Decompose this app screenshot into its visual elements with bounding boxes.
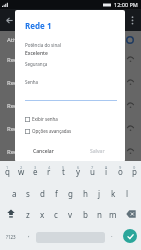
staticText: o xyxy=(118,166,123,177)
staticText: Rede 1 xyxy=(25,20,52,31)
staticText: 12:00 PM xyxy=(114,1,138,8)
staticText: Rede 4 xyxy=(7,125,27,133)
button[interactable]: g xyxy=(63,182,77,203)
staticText: Potência do sinal xyxy=(25,42,61,48)
button[interactable]: x xyxy=(35,203,49,224)
button[interactable]: 9 xyxy=(113,161,127,182)
staticText: Opções avançadas xyxy=(32,128,72,134)
button[interactable]: Rede 2 xyxy=(7,71,134,94)
staticText: u xyxy=(90,166,95,177)
staticText: n xyxy=(97,209,102,220)
staticText: b xyxy=(83,209,88,220)
button[interactable]: Rede 3 xyxy=(7,94,134,117)
staticText: d xyxy=(40,188,45,199)
button[interactable]: Rede 5 xyxy=(7,140,134,163)
button[interactable]: f xyxy=(49,182,63,203)
staticText: , xyxy=(28,231,30,239)
staticText: v xyxy=(68,209,73,220)
staticText: p xyxy=(132,166,137,177)
staticText: Rede 2 xyxy=(7,79,27,87)
staticText: 3 xyxy=(34,165,37,170)
staticText: e xyxy=(33,166,38,177)
button[interactable]: 6 xyxy=(71,161,85,182)
staticText: c xyxy=(54,209,58,220)
button[interactable]: 0 xyxy=(127,161,141,182)
staticText: Segurança xyxy=(25,61,48,67)
staticText: Rede 1 xyxy=(7,56,27,64)
staticText: g xyxy=(68,188,73,199)
staticText: Exibir senha xyxy=(32,116,58,122)
button[interactable]: Enter xyxy=(119,224,141,246)
button[interactable]: c xyxy=(49,203,63,224)
button[interactable]: 2 xyxy=(14,161,28,182)
button[interactable]: Ativado xyxy=(7,31,134,48)
staticText: k xyxy=(111,188,116,199)
staticText: Salvar xyxy=(90,148,105,155)
button[interactable]: Backspace xyxy=(120,203,141,224)
staticText: l xyxy=(126,188,129,199)
staticText: Senha xyxy=(25,79,39,85)
button[interactable]: Rede 1 xyxy=(7,48,134,71)
button[interactable]: Exibir senha xyxy=(24,115,59,123)
button[interactable]: h xyxy=(78,182,92,203)
button[interactable]: l xyxy=(120,182,134,203)
staticText: 5 xyxy=(62,165,65,170)
staticText: ?123 xyxy=(6,234,16,240)
staticText: 7 xyxy=(91,165,94,170)
button[interactable]: Salvar xyxy=(88,146,107,157)
staticText: j xyxy=(98,188,101,199)
staticText: 4 xyxy=(48,165,51,170)
button[interactable]: a xyxy=(7,182,21,203)
button[interactable]: m xyxy=(106,203,120,224)
staticText: h xyxy=(83,188,88,199)
staticText: r xyxy=(47,166,51,177)
button[interactable]: d xyxy=(35,182,49,203)
button[interactable]: Comma xyxy=(21,224,36,246)
button[interactable]: v xyxy=(63,203,77,224)
staticText: z xyxy=(26,209,30,220)
button[interactable]: Shift xyxy=(0,203,21,224)
button[interactable]: j xyxy=(92,182,106,203)
staticText: m xyxy=(109,209,117,220)
staticText: Rede 5 xyxy=(7,148,27,156)
button[interactable]: s xyxy=(21,182,35,203)
button[interactable]: 3 xyxy=(28,161,42,182)
button[interactable]: Opções avançadas xyxy=(24,127,73,135)
staticText: t xyxy=(62,166,65,177)
staticText: 8 xyxy=(105,165,108,170)
button[interactable]: 8 xyxy=(99,161,113,182)
button[interactable]: 5 xyxy=(56,161,70,182)
staticText: 6 xyxy=(77,165,80,170)
staticText: Excelente xyxy=(25,50,48,57)
staticText: q xyxy=(5,166,10,177)
staticText: y xyxy=(76,166,81,177)
staticText: 1 xyxy=(6,165,9,170)
staticText: x xyxy=(40,209,45,220)
staticText: s xyxy=(26,188,30,199)
button[interactable]: 1 xyxy=(0,161,14,182)
button[interactable]: k xyxy=(106,182,120,203)
staticText: i xyxy=(105,166,108,177)
button[interactable]: More options xyxy=(125,13,139,27)
staticText: Ativado xyxy=(7,36,29,44)
button[interactable]: z xyxy=(21,203,35,224)
staticText: 2 xyxy=(20,165,23,170)
staticText: Cancelar xyxy=(33,148,54,155)
staticText: w xyxy=(18,166,25,177)
staticText: . xyxy=(111,231,113,239)
button[interactable]: Cancelar xyxy=(31,146,56,157)
staticText: 0 xyxy=(133,165,136,170)
staticText: 9 xyxy=(119,165,122,170)
staticText: a xyxy=(12,188,17,199)
button[interactable]: ?123 xyxy=(0,224,21,246)
button[interactable]: n xyxy=(92,203,106,224)
staticText: Rede 3 xyxy=(7,102,27,110)
staticText: f xyxy=(55,188,58,199)
button[interactable]: 4 xyxy=(42,161,56,182)
button[interactable]: 7 xyxy=(85,161,99,182)
button[interactable]: b xyxy=(78,203,92,224)
button[interactable]: Back xyxy=(2,13,16,27)
button[interactable]: Rede 4 xyxy=(7,117,134,140)
